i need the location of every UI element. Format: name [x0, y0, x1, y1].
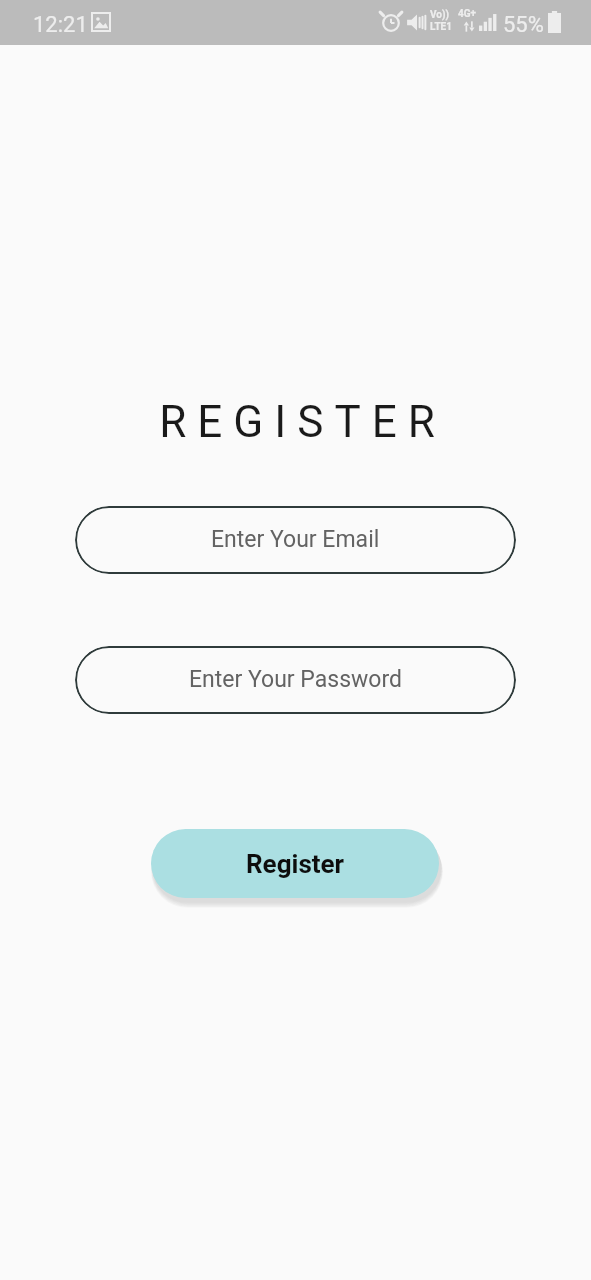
staticText: 4G+	[458, 8, 477, 20]
other: Mobile signal strength	[479, 14, 497, 31]
staticText: 12:21	[33, 12, 88, 38]
staticText: LTE1	[430, 21, 452, 33]
button[interactable]: Enter Your Email	[75, 506, 516, 574]
other: Alarm set	[381, 12, 401, 32]
other: Screenshot captured	[92, 13, 110, 31]
staticText: REGISTER	[159, 396, 446, 448]
button[interactable]: Enter Your Password	[75, 646, 516, 714]
staticText: Enter Your Email	[211, 526, 380, 553]
button[interactable]: Register	[151, 829, 439, 898]
staticText: 55%	[503, 12, 544, 38]
staticText: Vo))	[430, 9, 450, 21]
staticText: Enter Your Password	[189, 666, 402, 693]
other: Sound muted	[406, 13, 428, 32]
staticText: Register	[246, 849, 345, 879]
other: Battery 55 percent	[548, 11, 561, 33]
